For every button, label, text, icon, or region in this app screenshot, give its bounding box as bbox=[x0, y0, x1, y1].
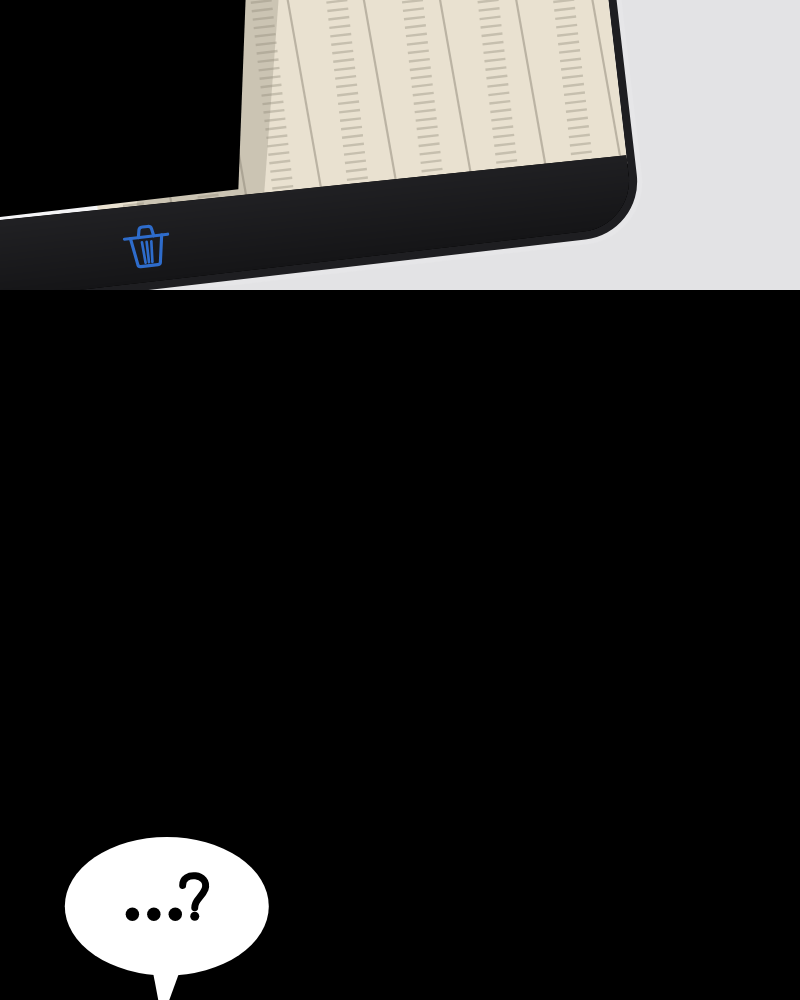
button[interactable]: Share bbox=[22, 148, 86, 212]
button[interactable]: Delete bbox=[508, 240, 574, 298]
